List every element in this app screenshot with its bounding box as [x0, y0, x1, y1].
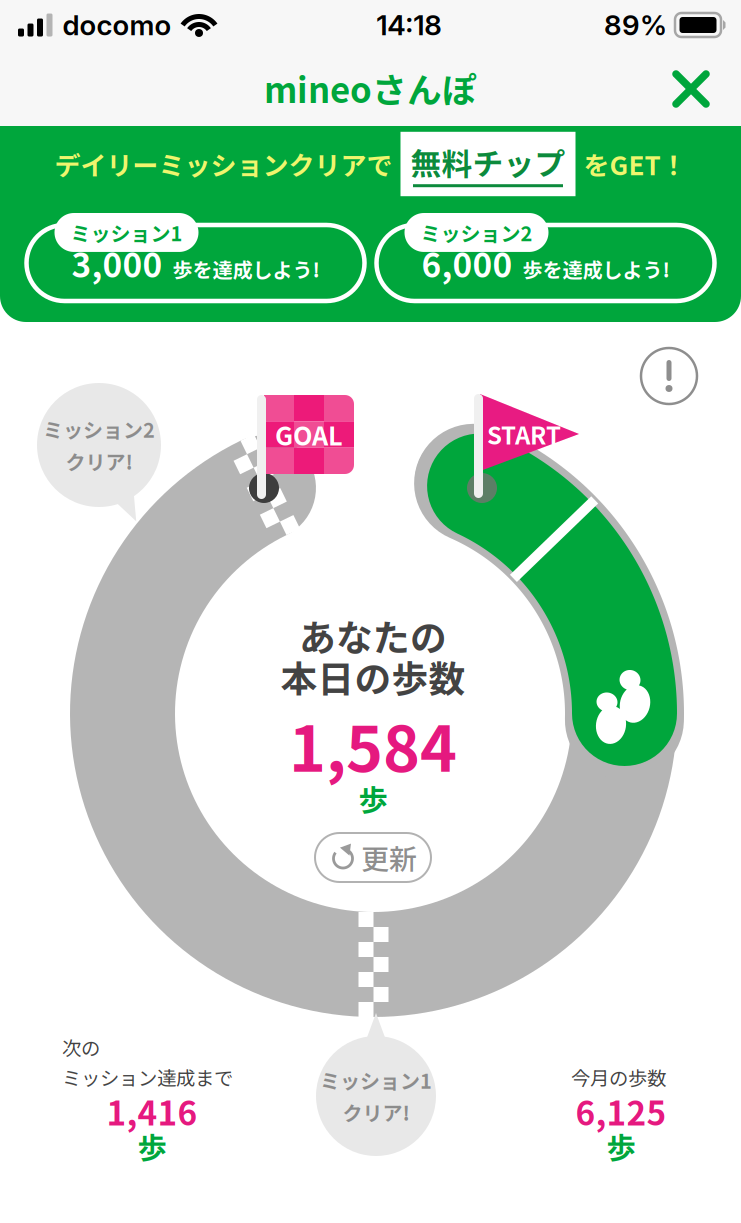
staticText: ミッション1: [70, 218, 182, 247]
staticText: 歩: [606, 1125, 635, 1167]
staticText: をGET！: [583, 145, 686, 183]
staticText: デイリーミッションクリアで: [54, 145, 392, 183]
staticText: 本日の歩数: [280, 650, 465, 703]
staticText: クリア!: [342, 1097, 409, 1126]
button[interactable]: Information: [638, 345, 700, 407]
staticText: 3,000: [71, 239, 162, 287]
staticText: 1,584: [289, 699, 457, 790]
staticText: 次の: [62, 1033, 100, 1061]
staticText: 6,125: [575, 1087, 666, 1135]
staticText: 歩を達成しよう!: [172, 254, 319, 283]
staticText: 14:18: [376, 8, 442, 42]
staticText: 無料チップ: [410, 140, 565, 184]
staticText: 89%: [604, 8, 667, 42]
staticText: START: [487, 417, 561, 451]
staticText: 6,000: [421, 239, 512, 287]
staticText: mineoさんぽ: [264, 63, 477, 113]
staticText: ミッション1: [320, 1065, 432, 1094]
button[interactable]: Close: [657, 55, 725, 123]
staticText: ミッション2: [420, 218, 532, 247]
staticText: 1,416: [106, 1087, 197, 1135]
staticText: ミッション2: [43, 414, 155, 443]
staticText: 歩: [137, 1125, 166, 1167]
staticText: 歩: [358, 777, 387, 819]
staticText: あなたの: [299, 609, 447, 662]
button[interactable]: 更新: [315, 833, 431, 882]
staticText: GOAL: [275, 416, 343, 453]
staticText: 今月の歩数: [571, 1063, 666, 1091]
staticText: docomo: [62, 8, 171, 42]
staticText: 更新: [361, 837, 417, 878]
staticText: 歩を達成しよう!: [522, 254, 669, 283]
staticText: ミッション達成まで: [62, 1063, 233, 1091]
staticText: クリア!: [65, 446, 132, 475]
